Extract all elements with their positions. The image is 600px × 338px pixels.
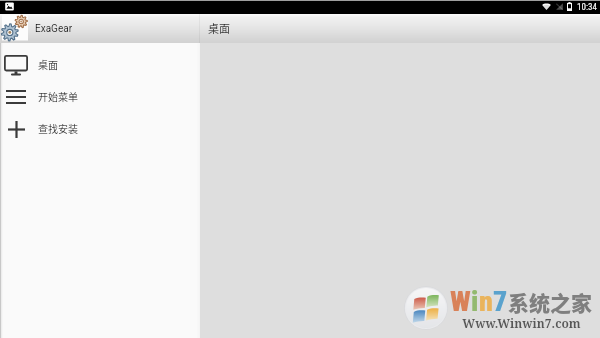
button[interactable]: 查找安装 <box>0 113 200 145</box>
button[interactable]: ExaGear <box>0 14 200 43</box>
button[interactable]: 桌面 <box>0 49 200 81</box>
staticText: Www.Winwin7.com <box>462 315 581 331</box>
staticText: 开始菜单 <box>38 89 78 103</box>
staticText: 查找安装 <box>38 121 78 135</box>
staticText: 7 <box>493 285 508 318</box>
staticText: ExaGear <box>35 23 73 35</box>
staticText: 桌面 <box>38 57 58 71</box>
staticText: 10:34 <box>577 2 597 13</box>
staticText: i <box>471 285 479 318</box>
button[interactable]: 开始菜单 <box>0 81 200 113</box>
staticText: n <box>479 285 493 318</box>
staticText: 系统之家 <box>508 287 592 317</box>
staticText: 桌面 <box>208 20 230 36</box>
staticText: W <box>450 285 471 318</box>
